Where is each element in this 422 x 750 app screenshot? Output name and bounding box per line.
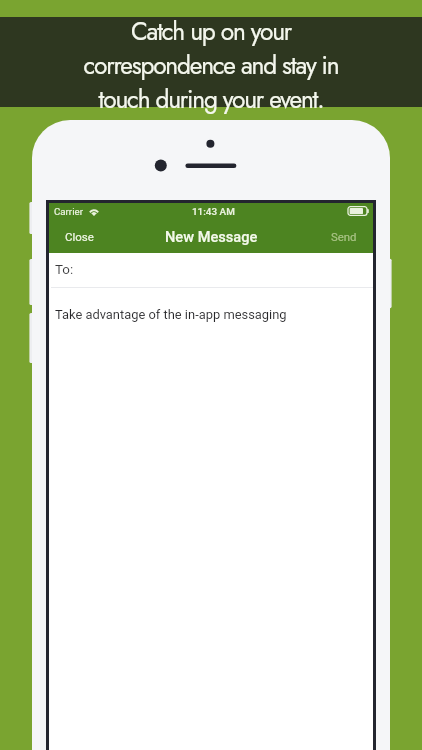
staticText: Carrier <box>54 206 83 217</box>
staticText: Take advantage of the in-app messaging <box>55 307 287 322</box>
button[interactable]: Close <box>49 223 106 253</box>
button[interactable]: Send <box>319 223 373 253</box>
staticText: Send <box>331 230 357 243</box>
staticText: To: <box>55 262 74 278</box>
staticText: 11:43 AM <box>192 206 235 218</box>
button[interactable]: To: <box>49 253 373 287</box>
staticText: Close <box>65 230 94 243</box>
staticText: New Message <box>165 228 258 245</box>
staticText: Catch up on your correspondence and stay… <box>0 14 422 118</box>
